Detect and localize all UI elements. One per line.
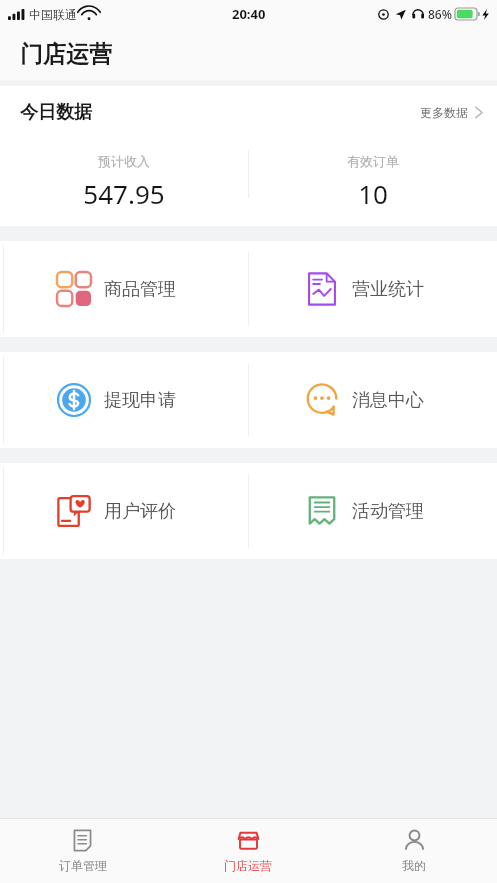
staticText: 提现申请: [104, 389, 176, 412]
staticText: 预计收入: [98, 153, 150, 169]
staticText: 86%: [428, 6, 452, 22]
staticText: 有效订单: [347, 153, 399, 169]
button[interactable]: 更多数据: [404, 95, 497, 130]
staticText: 活动管理: [352, 500, 424, 523]
staticText: 20:40: [232, 5, 266, 23]
staticText: 我的: [402, 858, 426, 873]
button[interactable]: 用户评价: [0, 463, 248, 559]
button[interactable]: 门店运营: [165, 819, 331, 883]
staticText: 今日数据: [20, 101, 92, 124]
staticText: 547.95: [83, 176, 165, 211]
staticText: 订单管理: [59, 858, 107, 873]
staticText: 用户评价: [104, 500, 176, 523]
button[interactable]: 活动管理: [248, 463, 497, 559]
button[interactable]: 商品管理: [0, 241, 248, 337]
button[interactable]: 订单管理: [0, 819, 165, 883]
button[interactable]: 消息中心: [248, 352, 497, 448]
staticText: 商品管理: [104, 278, 176, 301]
staticText: 门店运营: [20, 40, 112, 69]
staticText: 门店运营: [224, 858, 272, 873]
staticText: 10: [358, 176, 388, 211]
staticText: 营业统计: [352, 278, 424, 301]
staticText: 更多数据: [420, 105, 468, 120]
button[interactable]: 我的: [331, 819, 497, 883]
button[interactable]: 营业统计: [248, 241, 497, 337]
button[interactable]: 提现申请: [0, 352, 248, 448]
staticText: 中国联通: [29, 7, 77, 22]
staticText: 消息中心: [352, 389, 424, 412]
